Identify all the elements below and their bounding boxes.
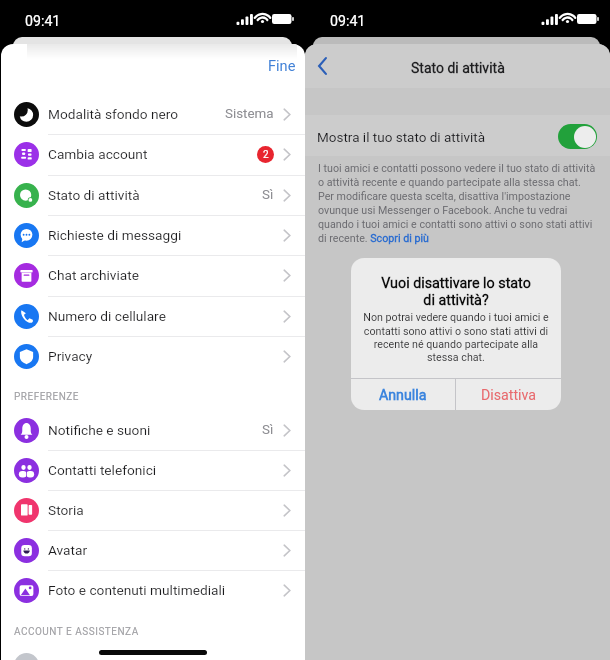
staticText: 09:41 (25, 13, 61, 30)
button[interactable]: Richieste di messaggi (1, 215, 305, 255)
staticText: Mostra il tuo stato di attività (317, 129, 486, 145)
staticText: Notifiche e suoni (48, 422, 151, 438)
button[interactable]: Stato di attività (1, 175, 305, 215)
staticText: Contatti telefonici (48, 462, 157, 478)
button[interactable]: Storia (1, 490, 305, 530)
staticText: Disattiva (481, 387, 537, 404)
staticText: 09:41 (330, 13, 366, 30)
button[interactable]: Contatti telefonici (1, 450, 305, 490)
staticText: PREFERENZE (14, 391, 80, 403)
button[interactable]: Annulla (351, 379, 455, 410)
staticText: Vuoi disattivare lo stato di attività? (376, 275, 536, 309)
button[interactable]: Fine (250, 49, 305, 84)
button[interactable]: Indietro (305, 50, 342, 84)
button[interactable]: Cambia account (1, 134, 305, 174)
button[interactable]: Mostra il tuo stato di attività (558, 124, 597, 149)
staticText: Annulla (379, 387, 427, 404)
staticText: Stato di attività (411, 60, 505, 76)
button[interactable]: Privacy (1, 336, 305, 376)
staticText: Privacy (48, 348, 93, 364)
button[interactable]: Disattiva (456, 379, 561, 410)
button[interactable]: Chat archiviate (1, 255, 305, 295)
staticText: Sì (262, 422, 274, 438)
staticText: Chat archiviate (48, 267, 139, 283)
staticText: Avatar (48, 542, 88, 558)
staticText: Modalità sfondo nero (48, 106, 179, 122)
staticText: ACCOUNT E ASSISTENZA (14, 626, 139, 638)
staticText: I tuoi amici e contatti possono vedere i… (318, 162, 599, 245)
staticText: Fine (268, 57, 296, 74)
staticText: Non potrai vedere quando i tuoi amici e … (361, 311, 551, 363)
button[interactable]: Numero di cellulare (1, 296, 305, 336)
button[interactable]: Notifiche e suoni (1, 410, 305, 450)
staticText: Sistema (225, 106, 274, 122)
staticText: Sì (262, 187, 274, 203)
button[interactable]: Avatar (1, 530, 305, 570)
button[interactable]: Foto e contenuti multimediali (1, 570, 305, 610)
staticText: Storia (48, 502, 84, 518)
button[interactable]: Modalità sfondo nero (1, 94, 305, 134)
staticText: Richieste di messaggi (48, 227, 182, 243)
staticText: Foto e contenuti multimediali (48, 582, 226, 598)
staticText: Numero di cellulare (48, 308, 166, 324)
staticText: Cambia account (48, 146, 148, 162)
staticText: Stato di attività (48, 187, 140, 203)
staticText: 2 (263, 149, 269, 161)
